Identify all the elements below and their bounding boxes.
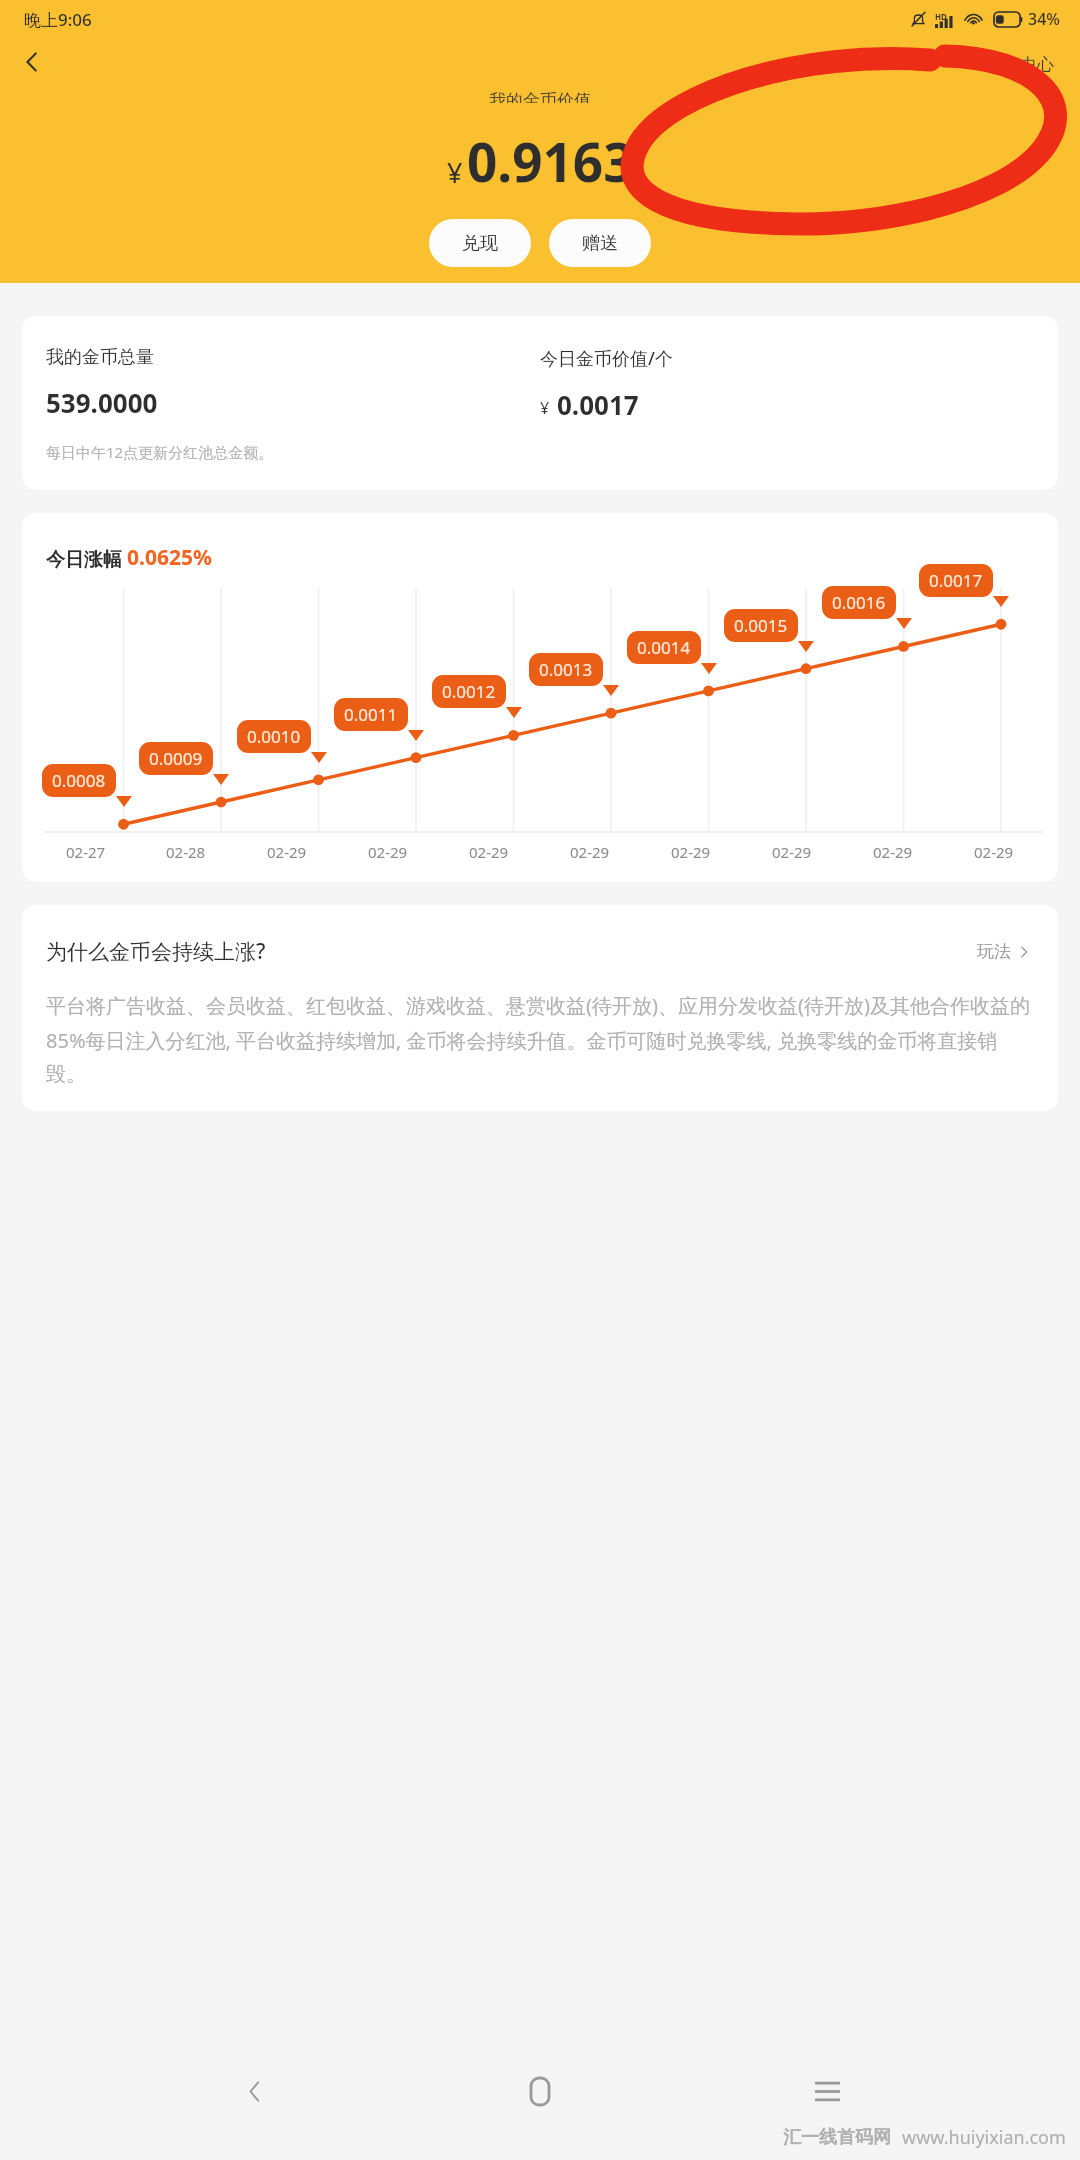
staticText: 任务中心 — [986, 54, 1054, 75]
button[interactable]: 赠送 — [549, 219, 651, 267]
staticText: 0.0014 — [637, 636, 691, 659]
staticText: 02-29 — [873, 842, 913, 862]
staticText: 02-27 — [66, 842, 106, 862]
staticText: 02-29 — [469, 842, 509, 862]
staticText: 02-29 — [772, 842, 812, 862]
staticText: 02-28 — [166, 842, 206, 862]
staticText: 0.0008 — [52, 769, 106, 792]
staticText: 兑现 — [462, 232, 498, 255]
staticText: 0.0625% — [127, 543, 212, 572]
button[interactable]: Back — [221, 2058, 287, 2124]
button[interactable]: Menu — [794, 2058, 860, 2124]
staticText: 0.0016 — [832, 591, 886, 614]
button[interactable]: 玩法 — [973, 937, 1034, 966]
staticText: 34% — [1028, 8, 1060, 30]
staticText: HD — [935, 11, 947, 22]
staticText: 02-29 — [368, 842, 408, 862]
staticText: 02-29 — [671, 842, 711, 862]
staticText: 我的金币总量 — [46, 346, 154, 369]
button[interactable]: Home — [507, 2058, 573, 2124]
staticText: 我的金币价值 — [489, 90, 591, 103]
staticText: 539.0000 — [46, 385, 158, 420]
staticText: 02-29 — [570, 842, 610, 862]
staticText: 0.9163 — [467, 125, 634, 197]
staticText: 汇一线首码网 — [783, 2126, 891, 2149]
staticText: ¥ — [447, 154, 463, 191]
staticText: 平台将广告收益、会员收益、红包收益、游戏收益、悬赏收益(待开放)、应用分发收益(… — [46, 992, 1034, 1087]
staticText: 每日中午12点更新分红池总金额。 — [46, 442, 274, 462]
staticText: 0.0017 — [557, 387, 639, 422]
staticText: 0.0012 — [442, 680, 496, 703]
staticText: 玩法 — [977, 941, 1011, 962]
staticText: ¥ — [540, 397, 550, 419]
staticText: www.huiyixian.com — [902, 2125, 1066, 2150]
staticText: 0.0015 — [734, 614, 788, 637]
staticText: 赠送 — [582, 232, 618, 255]
staticText: 0.0013 — [539, 658, 593, 681]
staticText: 0.0010 — [247, 725, 301, 748]
staticText: 0.0017 — [929, 569, 983, 592]
button[interactable]: 我的金币总量 — [22, 316, 1058, 490]
staticText: 02-29 — [974, 842, 1014, 862]
staticText: 今日涨幅 — [46, 548, 122, 572]
button[interactable]: 任务中心 — [986, 54, 1054, 75]
staticText: 为什么金币会持续上涨? — [46, 937, 266, 966]
button[interactable]: Back — [8, 38, 56, 86]
staticText: 今日金币价值/个 — [540, 346, 673, 371]
staticText: 0.0011 — [344, 703, 398, 726]
staticText: 晚上9:06 — [24, 8, 92, 31]
staticText: 02-29 — [267, 842, 307, 862]
staticText: 0.0009 — [149, 747, 203, 770]
button[interactable]: 兑现 — [429, 219, 531, 267]
